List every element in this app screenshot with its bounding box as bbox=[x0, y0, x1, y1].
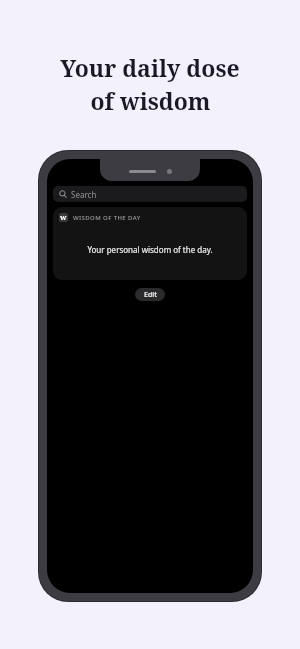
staticText: W bbox=[60, 214, 67, 222]
button[interactable]: Edit bbox=[135, 288, 165, 301]
staticText: Search bbox=[71, 189, 97, 200]
staticText: of wisdom bbox=[90, 85, 211, 116]
button[interactable]: W bbox=[53, 207, 247, 280]
button[interactable]: Search bbox=[53, 186, 247, 202]
staticText: WISDOM OF THE DAY bbox=[73, 214, 141, 222]
staticText: Your personal wisdom of the day. bbox=[87, 244, 213, 255]
staticText: Your daily dose bbox=[60, 52, 240, 83]
staticText: Edit bbox=[144, 290, 157, 300]
